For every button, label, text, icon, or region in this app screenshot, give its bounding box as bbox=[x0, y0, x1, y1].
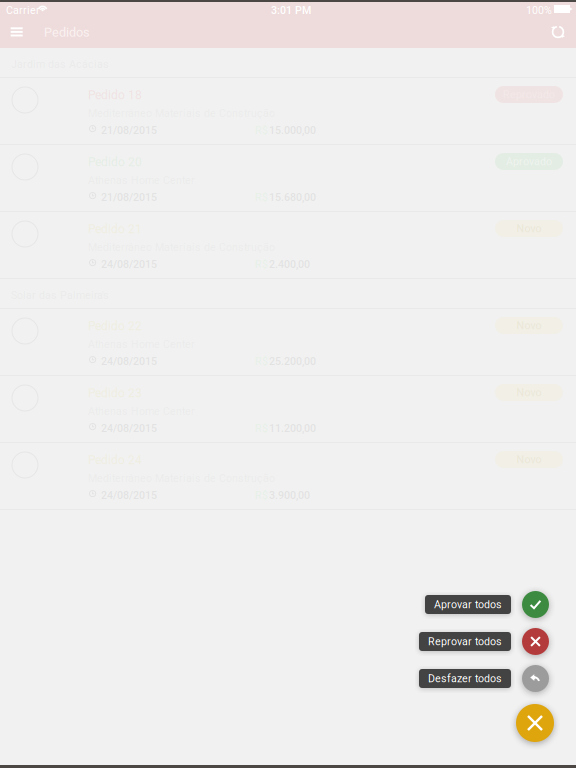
staticText: Aprovado bbox=[506, 155, 552, 168]
staticText: 25.200,00 bbox=[269, 355, 316, 367]
staticText: Carrier bbox=[6, 4, 40, 16]
button[interactable]: Menu bbox=[0, 0, 35, 47]
staticText: R$ bbox=[255, 258, 268, 270]
staticText: 15.680,00 bbox=[269, 191, 316, 203]
button[interactable]: Aprovar todos bbox=[425, 595, 511, 614]
staticText: 24/08/2015 bbox=[101, 489, 157, 501]
staticText: 24/08/2015 bbox=[101, 355, 157, 367]
staticText: Desfazer todos bbox=[428, 672, 502, 685]
staticText: Novo bbox=[516, 222, 541, 235]
staticText: 15.000,00 bbox=[269, 124, 316, 136]
staticText: 21/08/2015 bbox=[101, 124, 157, 136]
button[interactable]: Reprovar todos bbox=[419, 632, 511, 651]
staticText: 3.900,00 bbox=[269, 489, 310, 501]
staticText: Novo bbox=[516, 386, 541, 399]
staticText: Novo bbox=[516, 453, 541, 466]
staticText: 100% bbox=[526, 4, 552, 16]
button[interactable]: Desfazer todos bbox=[419, 669, 511, 688]
staticText: Pedido 24 bbox=[88, 453, 142, 467]
button[interactable]: Desfazer todos bbox=[522, 665, 549, 692]
staticText: Pedido 20 bbox=[88, 155, 142, 169]
staticText: R$ bbox=[255, 191, 268, 203]
staticText: R$ bbox=[255, 355, 268, 367]
button[interactable]: Fechar menu de ações bbox=[516, 704, 554, 742]
staticText: Pedido 21 bbox=[88, 222, 142, 236]
staticText: 2.400,00 bbox=[269, 258, 310, 270]
staticText: Aprovar todos bbox=[434, 598, 502, 611]
button[interactable]: Aprovar todos bbox=[522, 591, 549, 618]
button[interactable]: Reprovar todos bbox=[522, 628, 549, 655]
staticText: R$ bbox=[255, 489, 268, 501]
staticText: Pedido 18 bbox=[88, 88, 142, 102]
staticText: 21/08/2015 bbox=[101, 191, 157, 203]
staticText: 3:01 PM bbox=[271, 4, 311, 16]
staticText: R$ bbox=[255, 124, 268, 136]
staticText: Novo bbox=[516, 319, 541, 332]
staticText: Pedidos bbox=[44, 25, 90, 40]
staticText: Reprovar todos bbox=[428, 635, 502, 648]
staticText: 24/08/2015 bbox=[101, 258, 157, 270]
staticText: 11.200,00 bbox=[269, 422, 316, 434]
button[interactable]: Atualizar bbox=[0, 0, 576, 48]
staticText: R$ bbox=[255, 422, 268, 434]
staticText: 24/08/2015 bbox=[101, 422, 157, 434]
staticText: Pedido 23 bbox=[88, 386, 142, 400]
staticText: Pedido 22 bbox=[88, 319, 142, 333]
